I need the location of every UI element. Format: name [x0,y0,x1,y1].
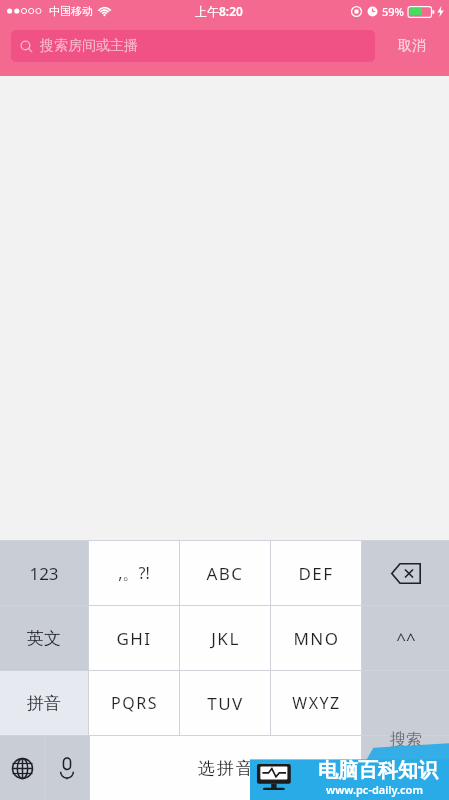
button[interactable]: JKL [180,606,270,670]
button[interactable]: 拼音 [0,671,88,735]
staticText: TUV [207,692,244,715]
staticText: 搜索 [390,730,422,750]
button[interactable]: ^^ [362,606,449,670]
button[interactable]: TUV [180,671,270,735]
button[interactable]: 取消 [375,22,449,70]
staticText: 取消 [398,37,426,55]
staticText: 搜索房间或主播 [40,37,138,55]
button[interactable]: DEF [271,541,361,605]
staticText: 中国移动 [49,4,93,18]
staticText: JKL [211,627,240,650]
button[interactable]: 英文 [0,606,88,670]
button[interactable] [362,671,449,735]
staticText: ,。?! [118,562,150,584]
staticText: 英文 [27,628,61,649]
button[interactable]: GHI [89,606,179,670]
staticText: 选拼音 [197,758,254,779]
staticText: ^^ [396,627,416,650]
button[interactable]: MNO [271,606,361,670]
button[interactable]: Backspace [362,541,449,605]
staticText: 123 [29,562,59,585]
button[interactable]: 选拼音 [90,736,361,800]
staticText: ABC [206,562,244,585]
button[interactable]: ,。?! [89,541,179,605]
button[interactable]: 123 [0,541,88,605]
staticText: GHI [116,627,152,650]
button[interactable]: 搜索 [362,736,449,800]
button[interactable]: PQRS [89,671,179,735]
button[interactable]: ABC [180,541,270,605]
staticText: 拼音 [27,693,61,714]
staticText: 59% [382,4,404,19]
staticText: PQRS [111,692,158,714]
staticText: DEF [298,562,334,585]
button[interactable]: 搜索房间或主播 [11,30,375,62]
staticText: MNO [293,627,340,650]
staticText: 上午8:20 [195,3,243,19]
staticText: www.pc-daily.com [326,782,423,797]
staticText: WXYZ [292,692,341,714]
button[interactable]: Switch keyboard [0,736,44,800]
button[interactable]: Voice input [45,736,89,800]
staticText: 电脑百科知识 [318,758,438,783]
button[interactable]: WXYZ [271,671,361,735]
